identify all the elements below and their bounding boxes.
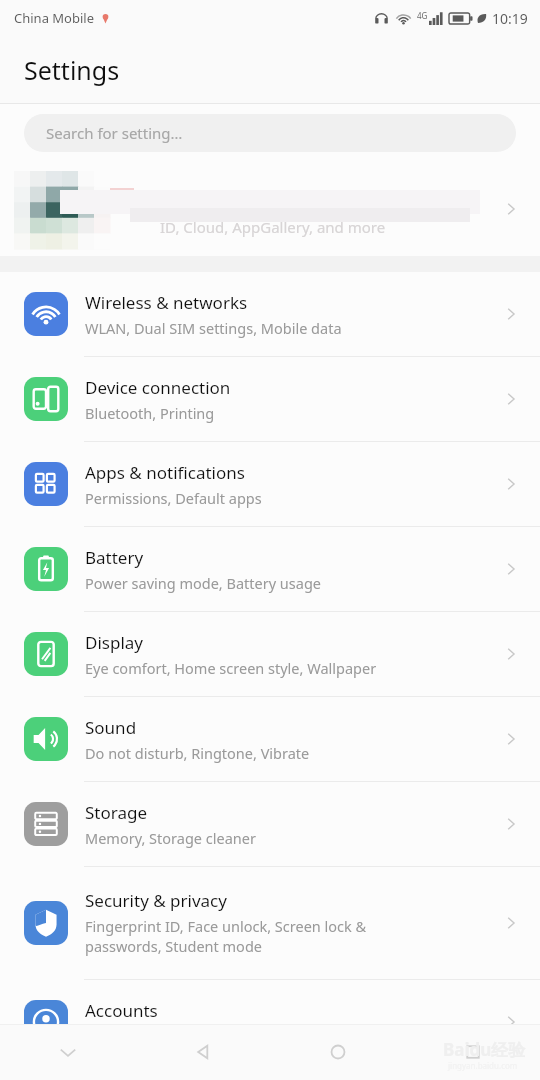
staticText: Storage <box>85 801 148 824</box>
button[interactable]: Storage <box>0 782 540 866</box>
staticText: Apps & notifications <box>85 461 245 484</box>
staticText: Baidu经验 <box>443 1038 526 1061</box>
button[interactable]: Apps & notifications <box>0 442 540 526</box>
button[interactable]: Sound <box>0 697 540 781</box>
button[interactable]: Search for setting… <box>24 114 516 152</box>
staticText: Device connection <box>85 376 231 399</box>
staticText: Do not disturb, Ringtone, Vibrate <box>85 743 310 763</box>
button[interactable]: Home <box>270 1024 405 1080</box>
staticText: Power saving mode, Battery usage <box>85 573 322 593</box>
staticText: 10:19 <box>492 9 528 28</box>
button[interactable]: Display <box>0 612 540 696</box>
staticText: Permissions, Default apps <box>85 488 262 508</box>
staticText: China Mobile <box>14 9 95 27</box>
button[interactable]: Recents <box>405 1024 540 1080</box>
staticText: ID, Cloud, AppGallery, and more <box>160 217 386 237</box>
staticText: Wireless & networks <box>85 291 248 314</box>
staticText: Search for setting… <box>46 123 183 143</box>
staticText: Eye comfort, Home screen style, Wallpape… <box>85 658 377 678</box>
button[interactable]: Security & privacy <box>0 867 540 979</box>
button[interactable]: Back <box>135 1024 270 1080</box>
staticText: Accounts <box>85 999 158 1022</box>
staticText: Fingerprint ID, Face unlock, Screen lock… <box>85 916 367 957</box>
button[interactable]: Battery <box>0 527 540 611</box>
staticText: Sound <box>85 716 137 739</box>
staticText: WLAN, Dual SIM settings, Mobile data <box>85 318 342 338</box>
staticText: Security & privacy <box>85 889 227 912</box>
staticText: Display <box>85 631 143 654</box>
staticText: Battery <box>85 546 144 569</box>
other: Account details <box>504 202 518 216</box>
staticText: 4G <box>417 10 428 21</box>
button[interactable]: ID, Cloud, AppGallery, and more <box>0 162 540 256</box>
button[interactable]: Wireless & networks <box>0 272 540 356</box>
button[interactable]: Accounts <box>0 980 540 1064</box>
staticText: Memory, Storage cleaner <box>85 828 256 848</box>
staticText: Bluetooth, Printing <box>85 403 215 423</box>
staticText: Settings <box>24 53 120 87</box>
button[interactable]: Device connection <box>0 357 540 441</box>
